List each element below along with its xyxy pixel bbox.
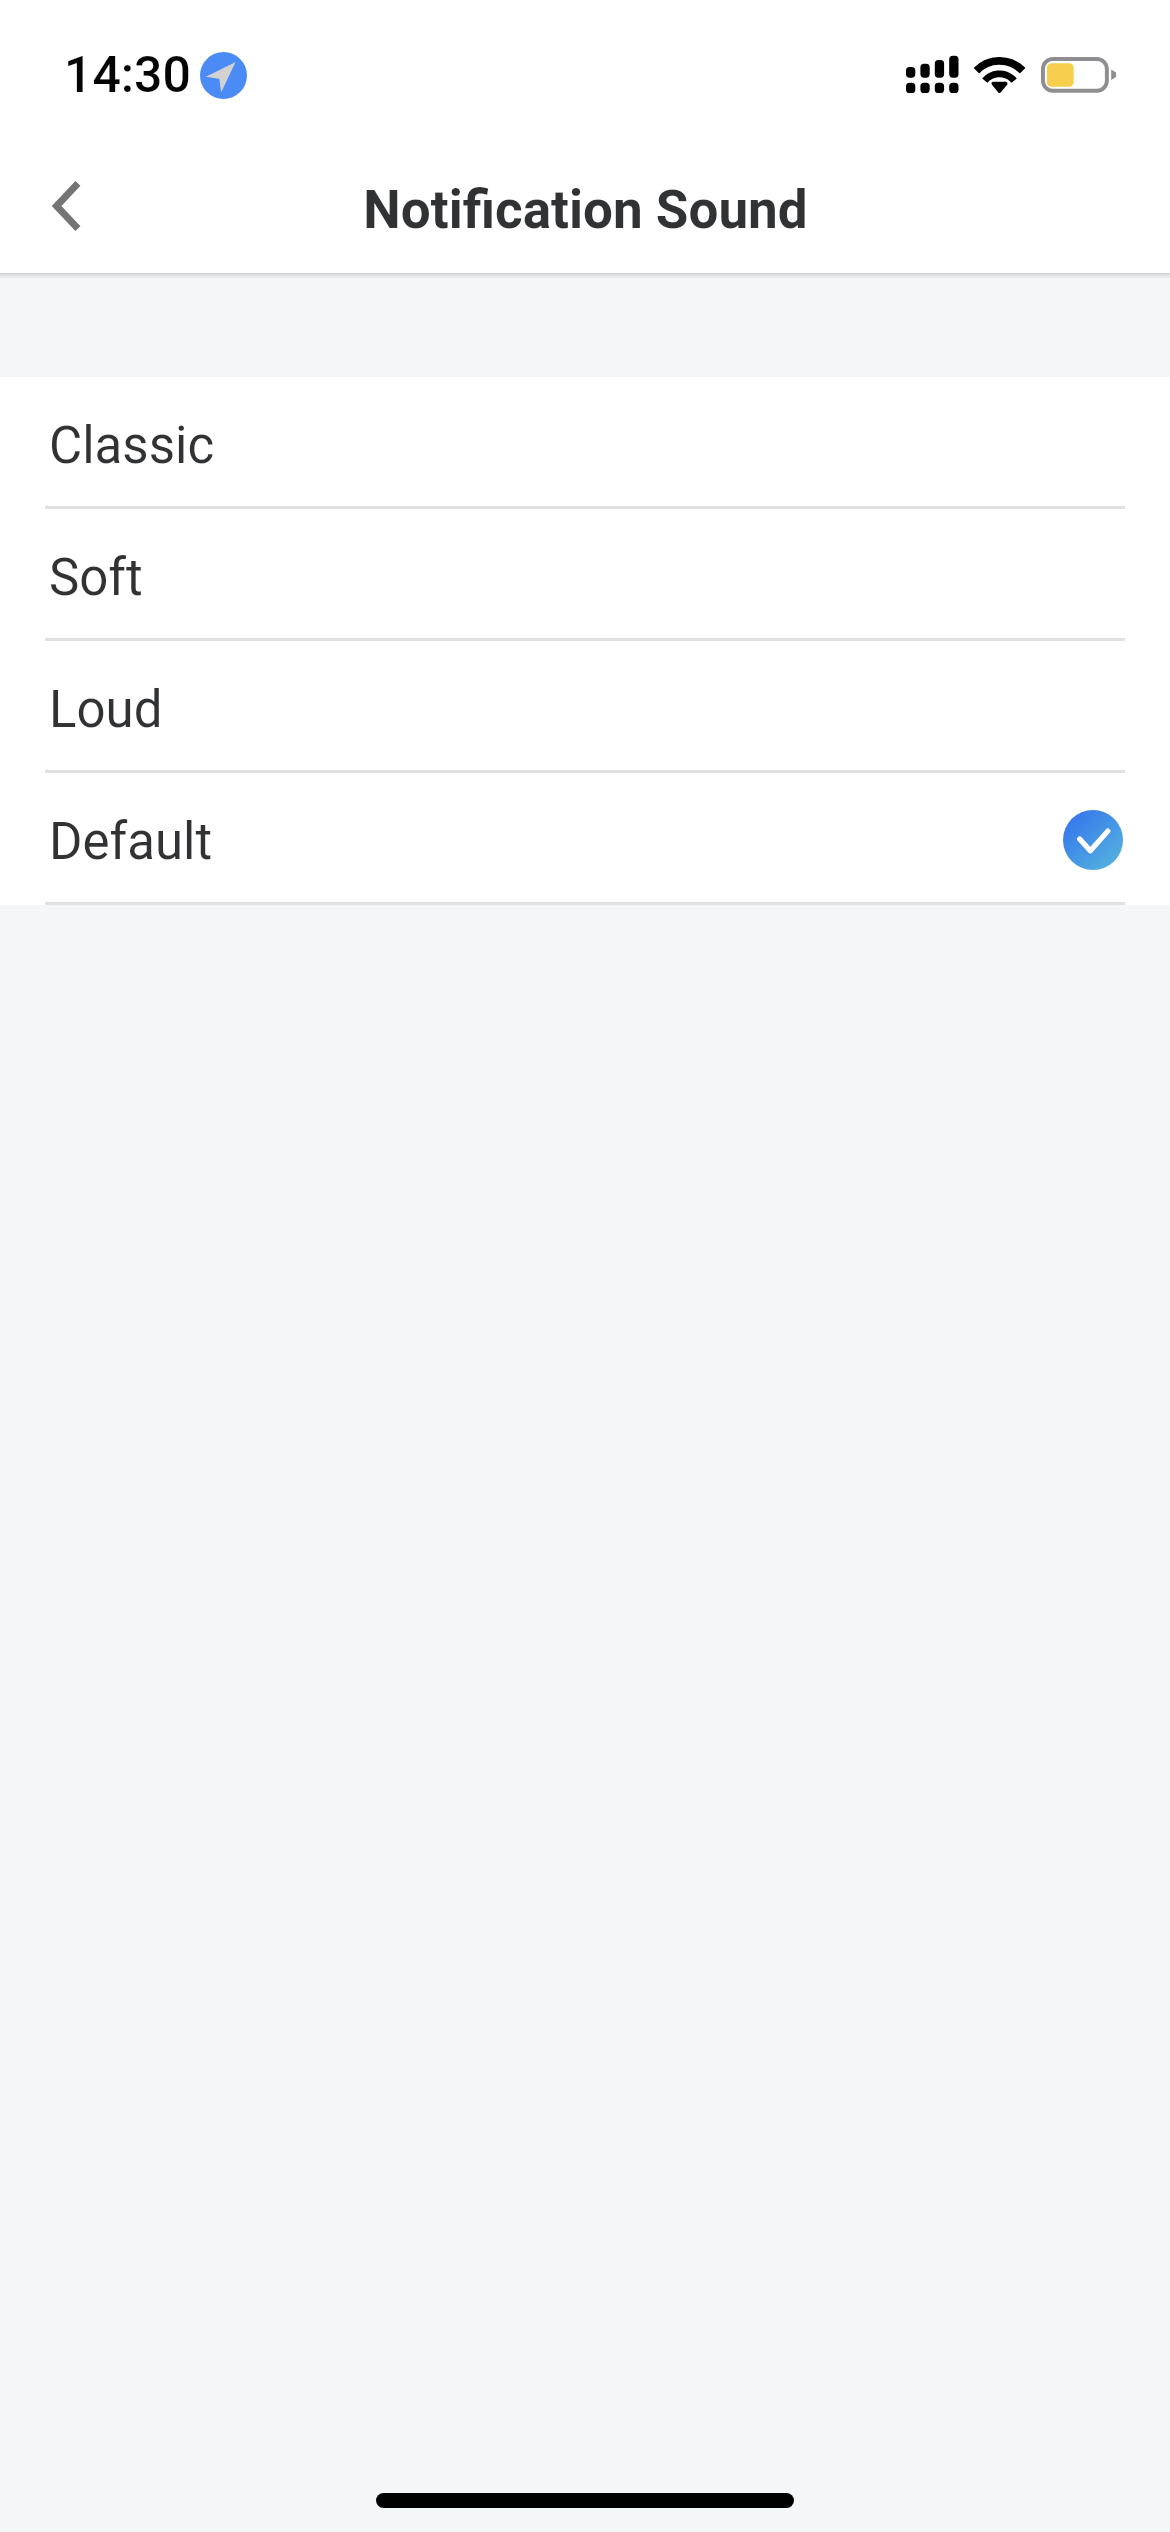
staticText: 14:30 [64,46,191,105]
button[interactable]: Default [0,773,1170,902]
button[interactable]: Back [16,156,116,256]
staticText: Classic [49,416,215,476]
button[interactable]: Loud [0,641,1170,770]
staticText: Default [49,812,213,872]
button[interactable]: Classic [0,377,1170,506]
staticText: Notification Sound [363,179,808,241]
button[interactable]: Soft [0,509,1170,638]
staticText: Loud [49,680,163,740]
staticText: Soft [49,548,143,608]
